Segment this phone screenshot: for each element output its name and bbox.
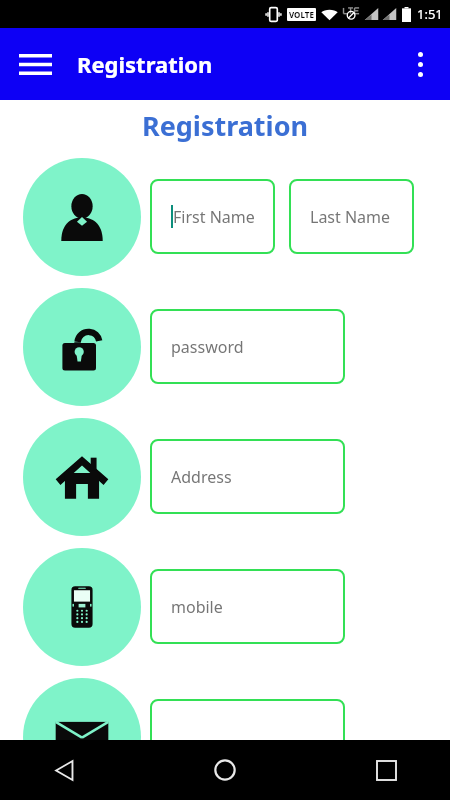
- button[interactable]: Mobile number: [23, 548, 141, 666]
- button[interactable]: First Name: [150, 179, 275, 254]
- staticText: Registration: [77, 49, 213, 79]
- button[interactable]: More options: [396, 40, 444, 88]
- button[interactable]: Open navigation menu: [10, 39, 60, 89]
- staticText: VOLTE: [289, 9, 314, 20]
- button[interactable]: Last Name: [289, 179, 414, 254]
- button[interactable]: Email: [23, 678, 141, 796]
- staticText: Registration: [0, 107, 450, 144]
- button[interactable]: Address: [150, 439, 345, 514]
- staticText: Address: [171, 466, 232, 488]
- button[interactable]: mobile: [150, 569, 345, 644]
- staticText: password: [171, 336, 244, 358]
- button[interactable]: Address: [23, 418, 141, 536]
- button[interactable]: [150, 699, 345, 774]
- staticText: Last Name: [310, 206, 391, 228]
- button[interactable]: Recent apps: [362, 746, 410, 794]
- button[interactable]: Password: [23, 288, 141, 406]
- staticText: 1:51: [417, 5, 443, 23]
- button[interactable]: Back: [40, 746, 88, 794]
- staticText: mobile: [171, 596, 223, 618]
- button[interactable]: password: [150, 309, 345, 384]
- button[interactable]: Name: [23, 158, 141, 276]
- staticText: First Name: [173, 206, 255, 228]
- button[interactable]: Home: [201, 746, 249, 794]
